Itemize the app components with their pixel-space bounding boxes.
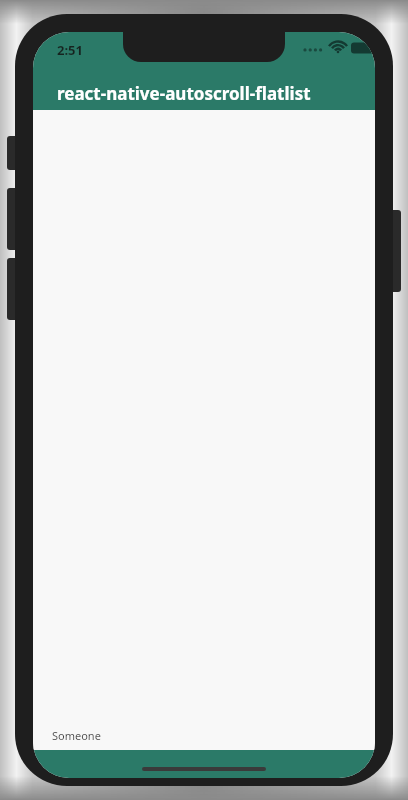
button[interactable]: Someone: [33, 720, 375, 750]
staticText: react-native-autoscroll-flatlist: [57, 82, 311, 105]
staticText: 2:51: [57, 41, 83, 59]
button[interactable]: react-native-autoscroll-flatlist: [33, 76, 375, 110]
other: Notch: [123, 32, 285, 62]
staticText: Someone: [52, 728, 101, 743]
